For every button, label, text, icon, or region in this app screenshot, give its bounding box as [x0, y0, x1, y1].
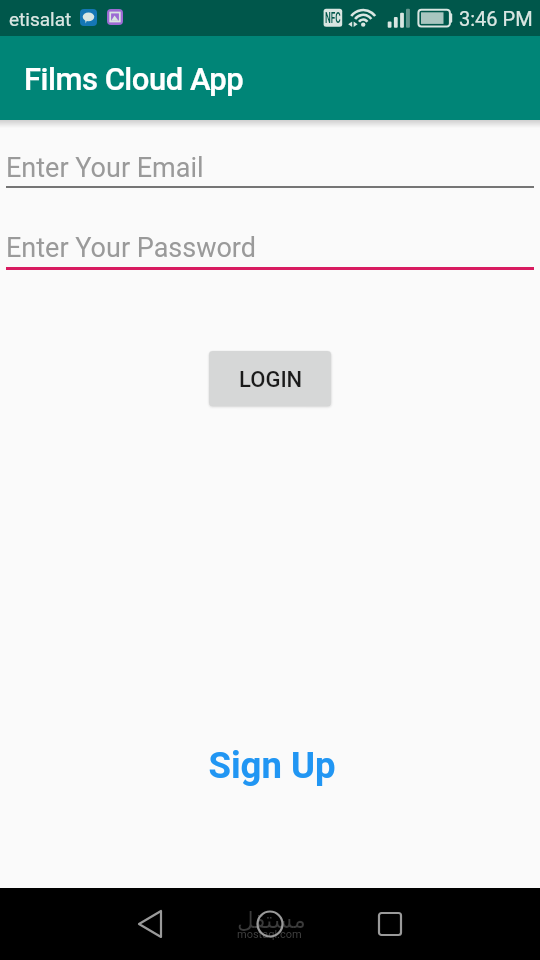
staticText: etisalat	[9, 8, 72, 30]
button[interactable]: Recent apps	[354, 888, 426, 960]
staticText: Films Cloud App	[24, 61, 244, 97]
button[interactable]: LOGIN	[209, 351, 331, 406]
button[interactable]: Sign Up	[0, 744, 540, 799]
button[interactable]: Back	[114, 888, 186, 960]
staticText: Sign Up	[208, 744, 336, 787]
staticText: 3:46 PM	[459, 7, 533, 30]
button[interactable]: Enter Your Password	[0, 225, 540, 271]
staticText: Enter Your Password	[6, 232, 257, 264]
button[interactable]: Enter Your Email	[0, 145, 540, 190]
button[interactable]: Home	[234, 888, 306, 960]
staticText: Enter Your Email	[6, 152, 204, 184]
staticText: mostaql.com	[237, 928, 302, 941]
staticText: مستقل	[237, 907, 306, 934]
staticText: NFC	[325, 9, 341, 27]
staticText: LOGIN	[239, 367, 303, 393]
